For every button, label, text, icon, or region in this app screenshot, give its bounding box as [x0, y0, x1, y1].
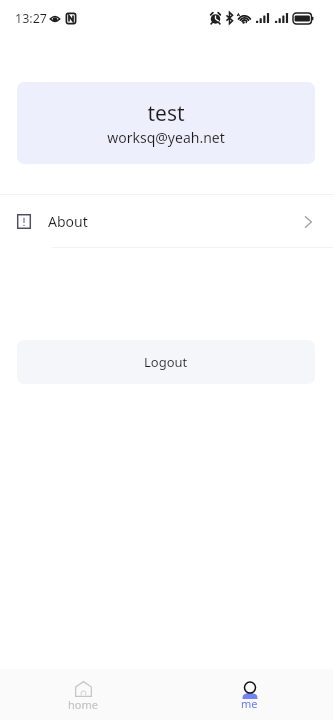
- staticText: me: [241, 696, 258, 711]
- button[interactable]: home: [0, 669, 166, 720]
- other: About: [304, 216, 312, 228]
- button[interactable]: test: [17, 82, 315, 164]
- staticText: worksq@yeah.net: [107, 128, 225, 147]
- staticText: About: [48, 212, 88, 231]
- button[interactable]: Logout: [17, 340, 315, 384]
- staticText: home: [68, 697, 98, 712]
- button[interactable]: me: [166, 669, 333, 720]
- staticText: Logout: [144, 353, 188, 371]
- button[interactable]: About: [0, 195, 333, 248]
- staticText: 13:27: [15, 10, 47, 27]
- staticText: test: [147, 99, 185, 128]
